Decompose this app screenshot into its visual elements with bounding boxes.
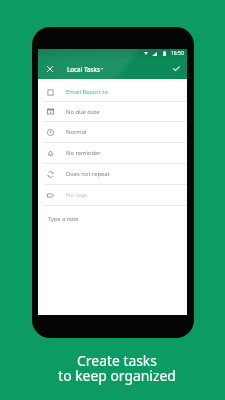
button[interactable]: Local Tasks xyxy=(67,65,103,73)
button[interactable]: Close xyxy=(38,58,61,79)
staticText: No tags xyxy=(66,191,88,199)
staticText: Local Tasks xyxy=(67,65,100,73)
button[interactable]: Done xyxy=(165,58,187,79)
button[interactable]: Normal xyxy=(38,122,187,142)
button[interactable]: No due date xyxy=(38,102,187,121)
button[interactable]: No reminder xyxy=(38,143,187,163)
staticText: Email Report to xyxy=(66,88,108,96)
staticText: to keep organized xyxy=(58,366,176,385)
button[interactable]: Email Report to xyxy=(38,83,187,101)
staticText: Create tasks xyxy=(77,351,157,370)
button[interactable]: Does not repeat xyxy=(38,164,187,184)
button[interactable]: Type a note xyxy=(38,206,187,232)
button[interactable]: No tags xyxy=(38,185,187,205)
staticText: Does not repeat xyxy=(66,170,110,178)
staticText: Type a note xyxy=(48,215,79,223)
staticText: Normal xyxy=(66,128,87,136)
staticText: No reminder xyxy=(66,149,101,157)
staticText: No due date xyxy=(66,108,100,116)
staticText: 16:50 xyxy=(171,50,184,57)
